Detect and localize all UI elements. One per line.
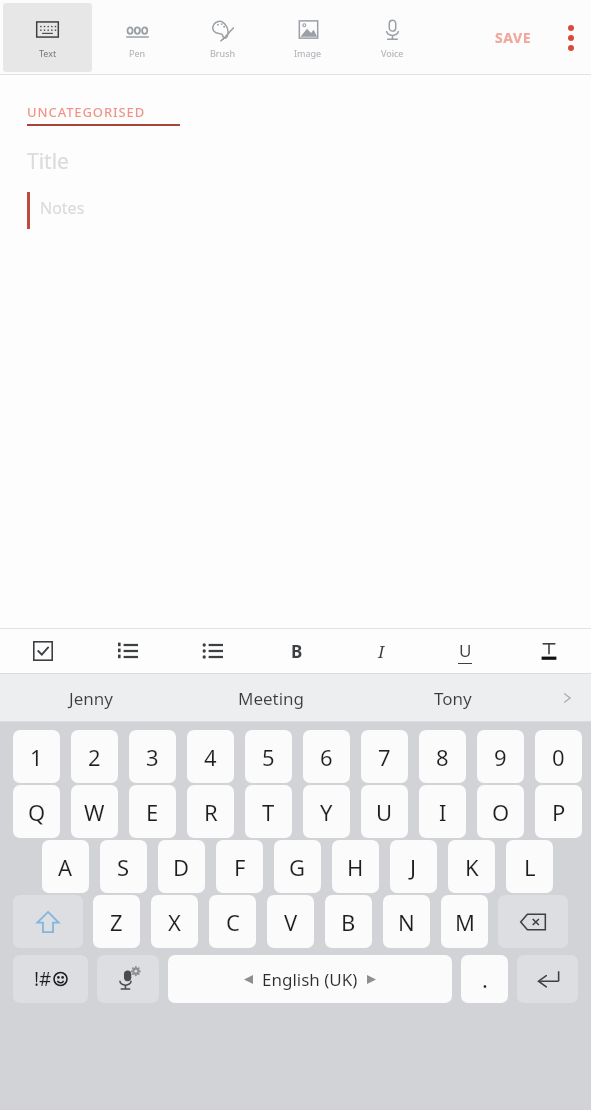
button[interactable]: N [383, 895, 430, 948]
staticText: R [204, 797, 218, 827]
staticText: O [492, 797, 510, 827]
staticText: 3 [146, 742, 159, 772]
button[interactable]: English (UK) [168, 955, 452, 1003]
button[interactable]: Bulleted list [170, 629, 255, 673]
button[interactable]: Symbols [13, 955, 88, 1003]
staticText: I [439, 797, 447, 827]
button[interactable]: Text [3, 3, 92, 72]
button[interactable]: J [390, 840, 437, 893]
button[interactable]: Pen [98, 3, 177, 72]
staticText: 6 [320, 742, 333, 772]
staticText: V [284, 907, 298, 937]
button[interactable]: 0 [535, 730, 582, 783]
staticText: Title [27, 147, 69, 176]
staticText: 4 [204, 742, 217, 772]
staticText: 1 [30, 742, 43, 772]
staticText: E [146, 797, 159, 827]
button[interactable]: T [245, 785, 292, 838]
staticText: A [58, 852, 73, 882]
button[interactable]: G [274, 840, 321, 893]
button[interactable]: U [361, 785, 408, 838]
button[interactable]: C [209, 895, 256, 948]
staticText: B [291, 640, 303, 663]
button[interactable]: W [71, 785, 118, 838]
button[interactable]: . [461, 955, 508, 1003]
staticText: 9 [494, 742, 507, 772]
staticText: English (UK) [262, 968, 358, 991]
staticText: G [289, 852, 306, 882]
button[interactable]: Italic [339, 629, 423, 673]
staticText: K [465, 852, 479, 882]
staticText: Tony [434, 687, 472, 710]
button[interactable]: 9 [477, 730, 524, 783]
button[interactable]: V [267, 895, 314, 948]
button[interactable]: P [535, 785, 582, 838]
staticText: D [173, 852, 190, 882]
button[interactable]: Jenny [0, 674, 181, 722]
staticText: 8 [436, 742, 449, 772]
staticText: . [482, 964, 488, 994]
button[interactable]: Voice [353, 3, 432, 72]
staticText: Q [28, 797, 46, 827]
button[interactable]: O [477, 785, 524, 838]
button[interactable]: D [158, 840, 205, 893]
staticText: Image [294, 47, 322, 59]
staticText: Jenny [69, 687, 113, 710]
button[interactable]: More options [551, 0, 591, 75]
button[interactable]: I [419, 785, 466, 838]
button[interactable]: S [100, 840, 147, 893]
button[interactable]: UNCATEGORISED [27, 103, 180, 126]
staticText: Brush [210, 47, 236, 59]
button[interactable]: Text colour [507, 629, 591, 673]
staticText: Notes [40, 197, 85, 219]
button[interactable]: 3 [129, 730, 176, 783]
button[interactable]: 6 [303, 730, 350, 783]
button[interactable]: B [325, 895, 372, 948]
button[interactable]: A [42, 840, 89, 893]
staticText: H [347, 852, 364, 882]
button[interactable]: K [448, 840, 495, 893]
staticText: J [410, 852, 417, 882]
staticText: S [117, 852, 130, 882]
button[interactable]: Voice input [97, 955, 159, 1003]
button[interactable]: H [332, 840, 379, 893]
button[interactable]: X [151, 895, 198, 948]
button[interactable]: SAVE [475, 0, 551, 75]
button[interactable]: R [187, 785, 234, 838]
button[interactable]: 2 [71, 730, 118, 783]
staticText: B [341, 907, 356, 937]
staticText: Voice [381, 47, 404, 59]
button[interactable]: 5 [245, 730, 292, 783]
staticText: W [84, 797, 105, 827]
button[interactable]: Brush [183, 3, 262, 72]
staticText: UNCATEGORISED [27, 103, 146, 121]
button[interactable]: 4 [187, 730, 234, 783]
button[interactable]: Meeting [181, 674, 362, 722]
staticText: !# [34, 966, 52, 992]
button[interactable]: M [441, 895, 488, 948]
button[interactable]: 8 [419, 730, 466, 783]
button[interactable]: Numbered list [85, 629, 170, 673]
staticText: Pen [129, 47, 146, 59]
button[interactable]: Y [303, 785, 350, 838]
button[interactable]: E [129, 785, 176, 838]
button[interactable]: Checklist [0, 629, 85, 673]
staticText: F [234, 852, 246, 882]
button[interactable]: F [216, 840, 263, 893]
staticText: X [168, 907, 181, 937]
button[interactable]: 1 [13, 730, 60, 783]
staticText: 5 [262, 742, 275, 772]
button[interactable]: Tony [362, 674, 543, 722]
button[interactable]: Image [268, 3, 347, 72]
button[interactable]: Shift [13, 895, 83, 948]
button[interactable]: 7 [361, 730, 408, 783]
button[interactable]: More suggestions [543, 674, 591, 722]
button[interactable]: Bold [255, 629, 339, 673]
button[interactable]: Backspace [498, 895, 568, 948]
button[interactable]: Enter [517, 955, 578, 1003]
button[interactable]: Q [13, 785, 60, 838]
button[interactable]: Z [93, 895, 140, 948]
button[interactable]: Underline [423, 629, 507, 673]
button[interactable]: L [506, 840, 553, 893]
staticText: Meeting [238, 687, 305, 710]
